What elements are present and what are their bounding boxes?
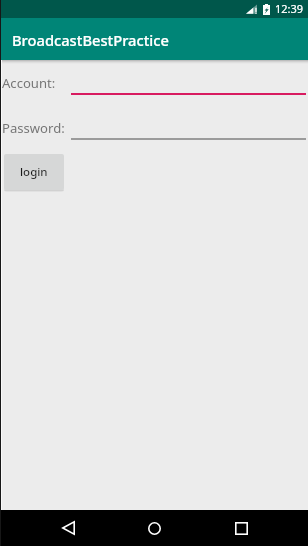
other: Battery charging [263,4,270,15]
button[interactable]: Back [44,510,92,546]
staticText: 12:39 [275,1,304,16]
button[interactable]: Recent apps [216,510,264,546]
other: Mobile signal [246,4,257,14]
button[interactable]: login [4,154,64,190]
staticText: login [20,164,48,180]
staticText: Password: [2,119,65,137]
button[interactable]: Account input [71,77,306,95]
staticText: BroadcastBestPractice [12,30,169,50]
staticText: Account: [2,74,56,92]
button[interactable]: Home [130,510,178,546]
button[interactable]: Password input [71,122,306,140]
